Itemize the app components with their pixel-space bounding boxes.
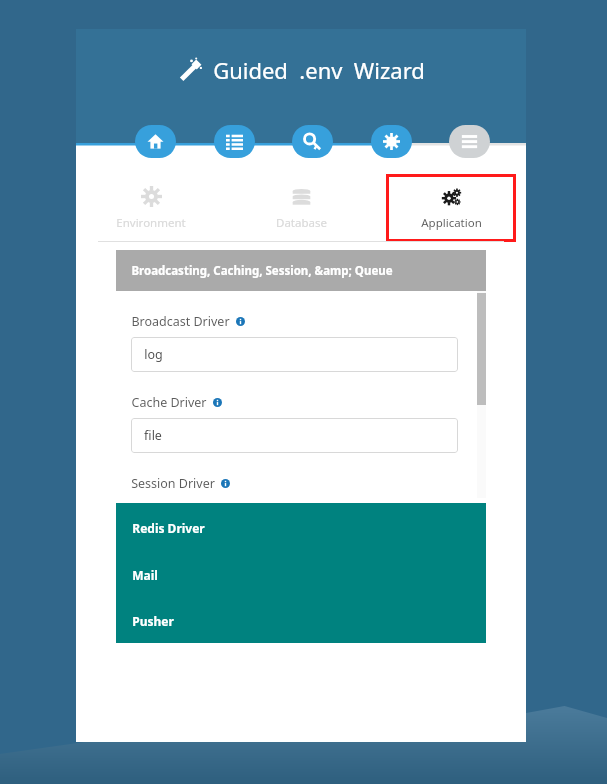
staticText: Redis Driver [132,520,205,536]
button[interactable]: file [131,418,458,453]
staticText: Application [421,215,482,231]
staticText: Broadcasting, Caching, Session, &amp; Qu… [131,263,393,279]
button[interactable]: Home [135,125,176,158]
staticText: Cache Driver [131,394,207,411]
staticText: Mail [132,567,158,583]
button[interactable]: Database [236,174,366,242]
staticText: log [144,346,163,363]
button[interactable]: Environment [86,174,216,242]
button[interactable]: Settings [371,125,412,158]
staticText: Environment [116,215,186,231]
staticText: Session Driver [131,475,215,492]
staticText: file [144,427,162,444]
button[interactable]: Application [386,174,516,242]
staticText: Database [276,215,327,231]
button[interactable]: Pusher [116,599,486,643]
staticText: Broadcast Driver [131,313,230,330]
button[interactable]: List [214,125,255,158]
button[interactable]: log [131,337,458,372]
button[interactable]: Redis Driver [116,503,486,551]
staticText: Guided .env Wizard [213,55,425,85]
button[interactable]: Mail [116,551,486,599]
staticText: Pusher [132,613,174,629]
button[interactable]: Server [449,125,490,158]
button[interactable]: Key [292,125,333,158]
